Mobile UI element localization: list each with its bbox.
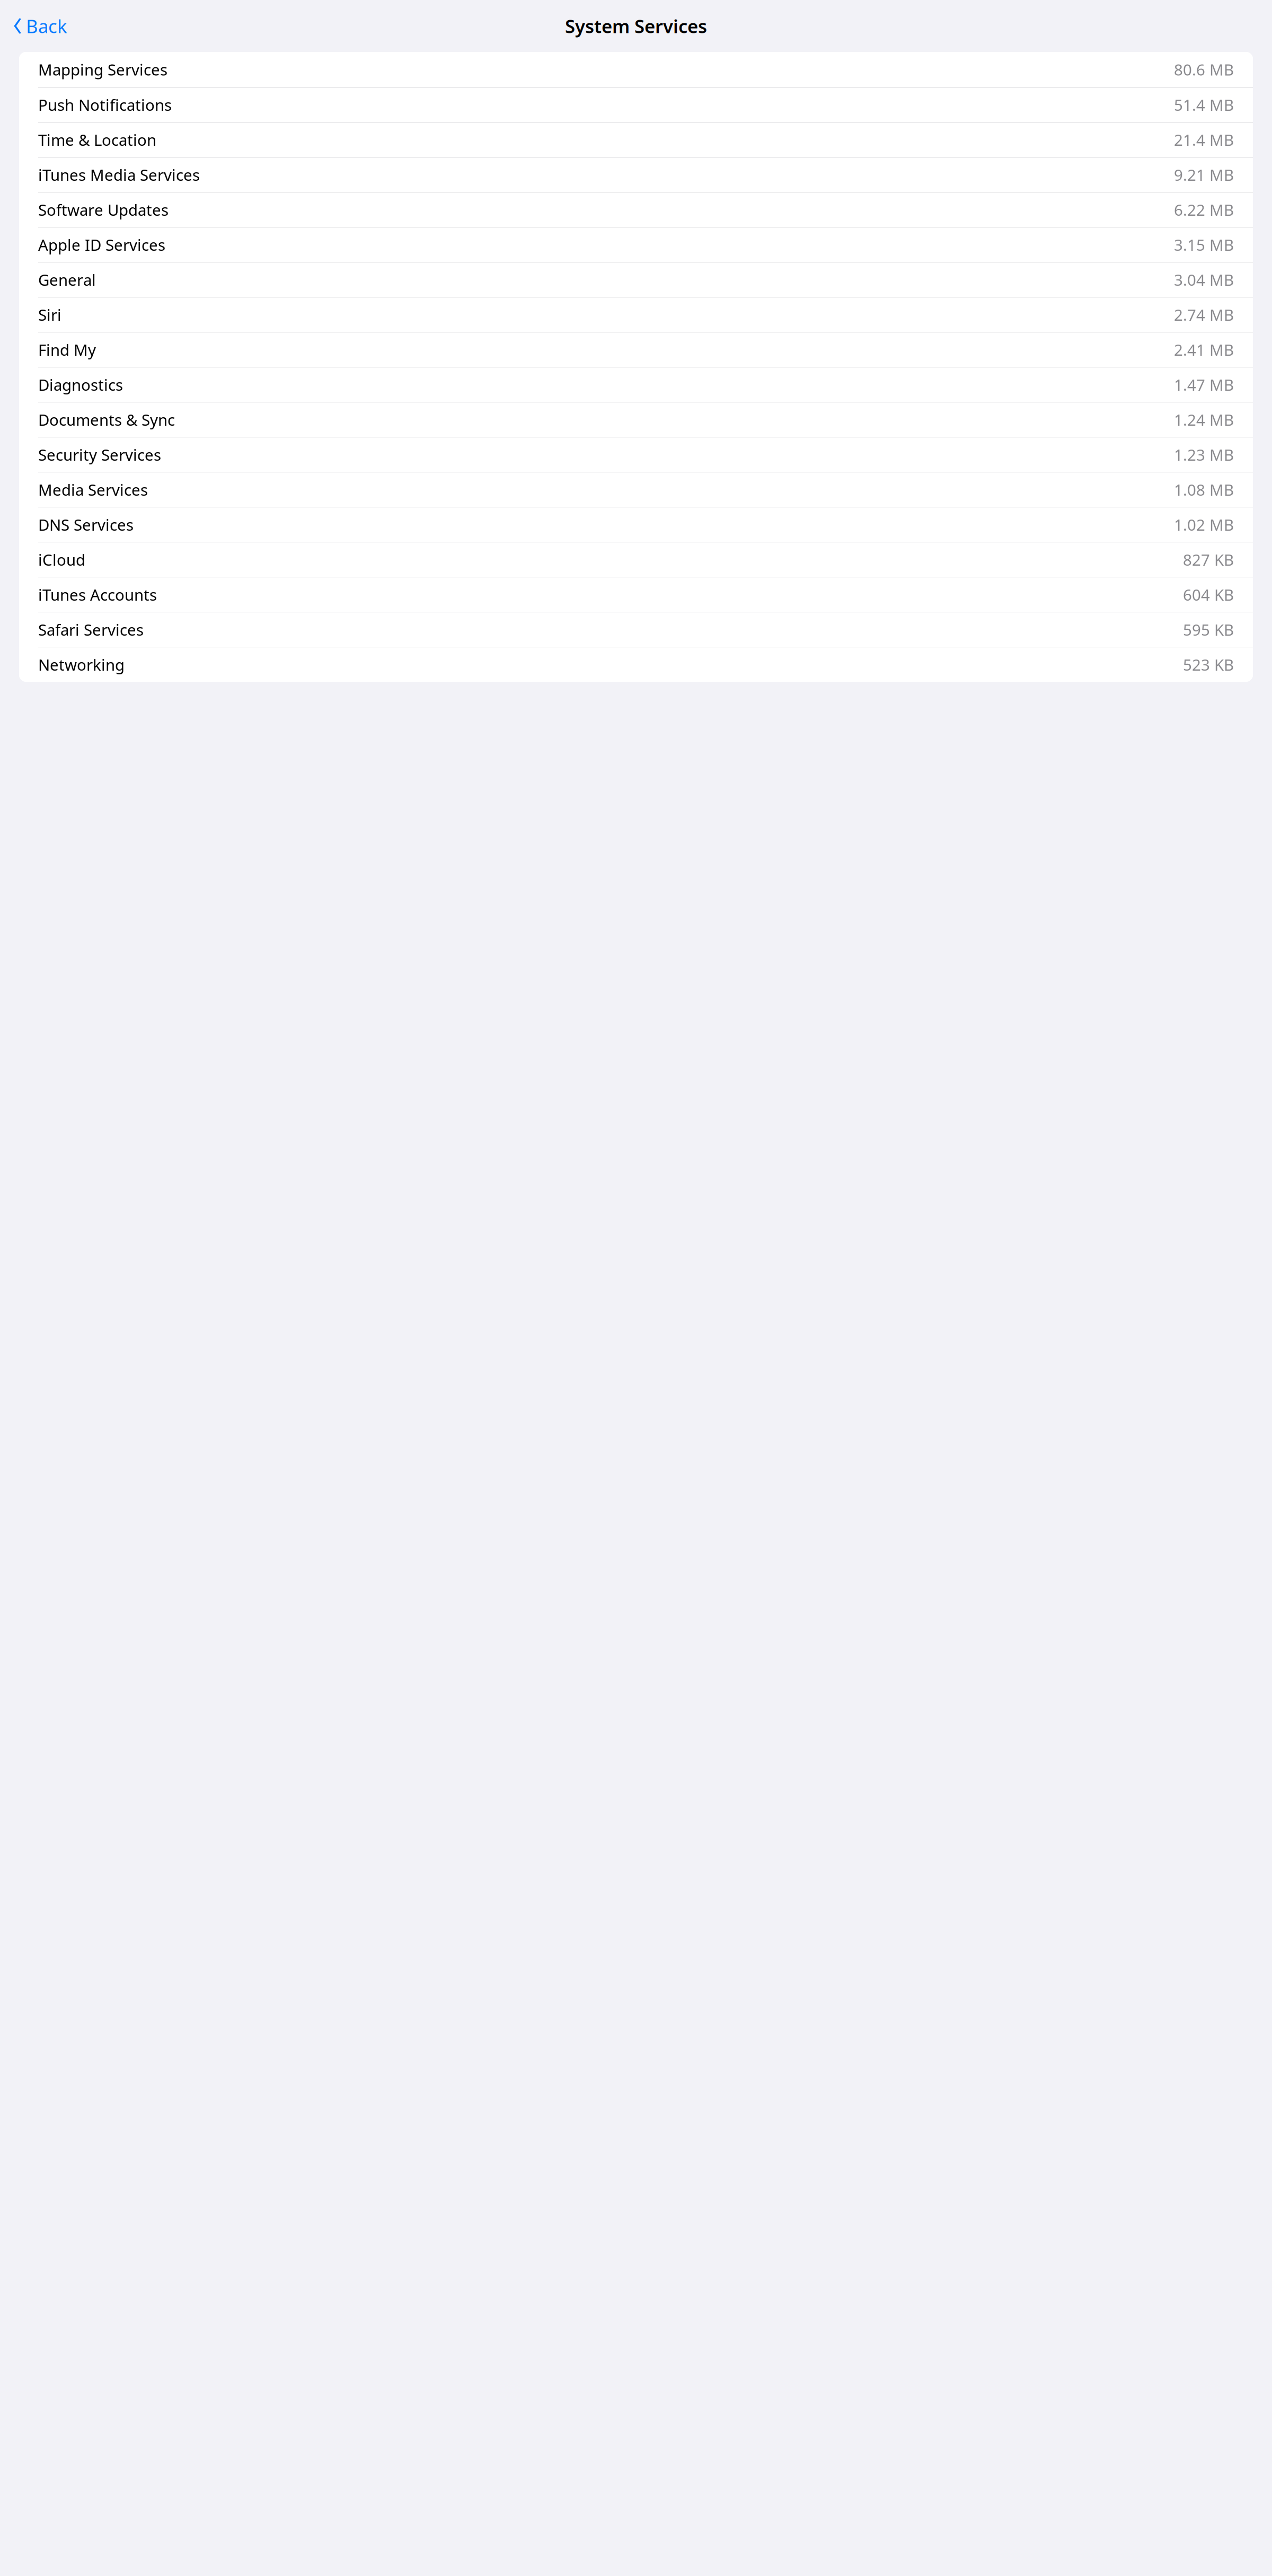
staticText: General: [38, 269, 96, 290]
staticText: 595 KB: [1183, 619, 1234, 640]
staticText: 604 KB: [1183, 584, 1234, 605]
staticText: Documents & Sync: [38, 409, 175, 430]
button[interactable]: Security Services: [19, 437, 1253, 472]
staticText: 523 KB: [1183, 654, 1234, 675]
staticText: Back: [26, 14, 67, 38]
staticText: 1.02 MB: [1174, 514, 1234, 535]
button[interactable]: iTunes Accounts: [19, 577, 1253, 612]
staticText: iTunes Accounts: [38, 584, 157, 605]
button[interactable]: Apple ID Services: [19, 227, 1253, 262]
staticText: Time & Location: [38, 129, 156, 150]
button[interactable]: DNS Services: [19, 507, 1253, 542]
staticText: Push Notifications: [38, 94, 172, 115]
staticText: 21.4 MB: [1174, 129, 1234, 150]
staticText: DNS Services: [38, 514, 134, 535]
staticText: 3.15 MB: [1174, 234, 1234, 255]
button[interactable]: Documents & Sync: [19, 402, 1253, 437]
staticText: Find My: [38, 339, 96, 360]
staticText: 1.47 MB: [1174, 374, 1234, 395]
staticText: Siri: [38, 304, 61, 325]
button[interactable]: Siri: [19, 297, 1253, 332]
staticText: 1.24 MB: [1174, 409, 1234, 430]
button[interactable]: Time & Location: [19, 122, 1253, 157]
staticText: 3.04 MB: [1174, 269, 1234, 290]
staticText: 2.74 MB: [1174, 304, 1234, 325]
staticText: Safari Services: [38, 619, 144, 640]
button[interactable]: Push Notifications: [19, 87, 1253, 122]
button[interactable]: Networking: [19, 647, 1253, 682]
button[interactable]: iCloud: [19, 542, 1253, 577]
staticText: Media Services: [38, 479, 148, 500]
button[interactable]: Media Services: [19, 472, 1253, 507]
staticText: 1.23 MB: [1174, 444, 1234, 465]
button[interactable]: Mapping Services: [19, 52, 1253, 87]
staticText: Mapping Services: [38, 59, 167, 80]
staticText: 51.4 MB: [1174, 94, 1234, 115]
staticText: Security Services: [38, 444, 161, 465]
staticText: 80.6 MB: [1174, 59, 1234, 80]
staticText: 9.21 MB: [1174, 164, 1234, 185]
staticText: iTunes Media Services: [38, 164, 200, 185]
button[interactable]: General: [19, 262, 1253, 297]
staticText: iCloud: [38, 549, 85, 570]
staticText: Apple ID Services: [38, 234, 165, 255]
staticText: System Services: [565, 14, 707, 38]
staticText: 1.08 MB: [1174, 479, 1234, 500]
staticText: Software Updates: [38, 199, 169, 220]
button[interactable]: Software Updates: [19, 192, 1253, 227]
button[interactable]: Back: [0, 10, 75, 42]
staticText: 2.41 MB: [1174, 339, 1234, 360]
staticText: 827 KB: [1183, 549, 1234, 570]
button[interactable]: Safari Services: [19, 612, 1253, 647]
staticText: 6.22 MB: [1174, 199, 1234, 220]
staticText: Networking: [38, 654, 125, 675]
button[interactable]: Find My: [19, 332, 1253, 367]
button[interactable]: Diagnostics: [19, 367, 1253, 402]
button[interactable]: iTunes Media Services: [19, 157, 1253, 192]
staticText: Diagnostics: [38, 374, 123, 395]
